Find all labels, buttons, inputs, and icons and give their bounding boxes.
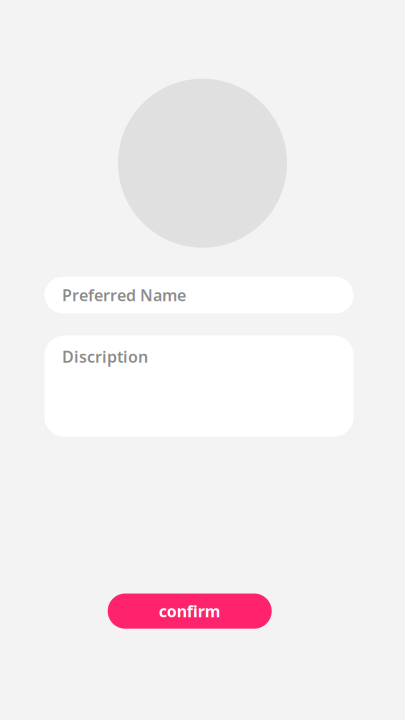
- staticText: confirm: [159, 600, 221, 622]
- button[interactable]: confirm: [108, 593, 272, 629]
- staticText: Preferred Name: [62, 284, 186, 306]
- button[interactable]: Preferred Name: [44, 277, 353, 313]
- button[interactable]: Discription: [44, 335, 353, 437]
- staticText: Discription: [62, 346, 148, 367]
- button[interactable]: Choose profile photo: [118, 79, 287, 248]
